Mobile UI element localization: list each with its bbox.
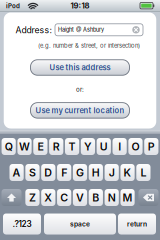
button[interactable]: O [128,138,143,155]
staticText: return [127,220,147,228]
button[interactable]: G [73,164,87,181]
button[interactable]: M [120,189,135,206]
staticText: iPod [6,2,20,10]
staticText: J [109,166,115,179]
button[interactable]: K [120,164,135,181]
staticText: space [70,220,90,228]
staticText: (e.g. number & street, or intersection) [38,42,140,49]
staticText: .?123 [12,219,31,229]
staticText: O [131,140,139,153]
button[interactable]: N [105,189,119,206]
button[interactable]: space [44,213,116,234]
staticText: W [19,140,30,153]
button[interactable]: X [41,189,55,206]
button[interactable]: Shift [1,189,21,206]
staticText: S [29,166,36,179]
staticText: Use my current location [35,106,124,115]
staticText: U [100,140,108,153]
staticText: Z [29,191,36,204]
button[interactable]: Q [2,138,16,155]
button[interactable]: J [105,164,119,181]
button[interactable]: D [41,164,55,181]
button[interactable]: U [97,138,111,155]
staticText: K [123,166,131,179]
button[interactable]: T [65,138,79,155]
staticText: L [140,166,146,179]
staticText: M [122,191,132,204]
staticText: V [76,191,84,204]
button[interactable]: return [118,213,156,234]
staticText: H [92,166,100,179]
button[interactable]: .?123 [3,213,41,234]
button[interactable]: C [57,189,71,206]
button[interactable]: W [17,138,32,155]
button[interactable]: Delete [138,189,158,206]
button[interactable]: Use this address [30,59,130,76]
button[interactable]: H [89,164,103,181]
button[interactable]: F [57,164,71,181]
staticText: or: [76,86,84,93]
button[interactable]: A [9,164,24,181]
button[interactable]: P [144,138,158,155]
button[interactable]: L [136,164,150,181]
staticText: F [61,166,67,179]
button[interactable]: B [89,189,103,206]
staticText: E [37,140,43,153]
staticText: A [13,166,21,179]
staticText: Use this address [49,63,110,72]
staticText: B [92,191,99,204]
staticText: R [53,140,60,153]
staticText: X [44,191,52,204]
button[interactable]: V [73,189,87,206]
button[interactable]: I [112,138,127,155]
button[interactable]: Y [81,138,95,155]
staticText: Haight @ Ashbury [58,26,104,33]
button[interactable]: R [49,138,63,155]
staticText: P [148,140,155,153]
staticText: C [60,191,68,204]
staticText: Q [5,140,13,153]
button[interactable]: E [33,138,47,155]
button[interactable]: S [25,164,40,181]
staticText: D [44,166,52,179]
button[interactable]: Z [25,189,40,206]
staticText: 19:18 [70,1,89,10]
button[interactable]: Clear text [130,24,141,35]
staticText: I [118,140,121,153]
staticText: Y [84,140,92,153]
button[interactable]: Use my current location [30,102,130,119]
staticText: G [76,166,84,179]
staticText: Address: [15,25,51,35]
staticText: N [108,191,116,204]
staticText: T [69,140,76,153]
